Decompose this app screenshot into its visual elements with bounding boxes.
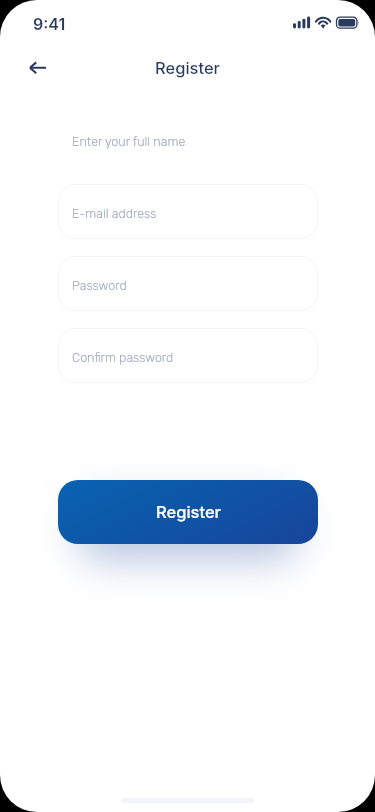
staticText: Confirm password [72, 350, 174, 365]
staticText: Enter your full name [72, 134, 186, 149]
button[interactable]: E-mail address [58, 184, 318, 239]
staticText: 9:41 [33, 14, 66, 33]
staticText: Register [155, 58, 220, 78]
button[interactable]: Back [18, 48, 58, 88]
staticText: Password [72, 278, 127, 293]
staticText: Register [156, 502, 221, 522]
button[interactable]: Enter your full name [58, 112, 318, 167]
staticText: E-mail address [72, 206, 157, 221]
button[interactable]: Password [58, 256, 318, 311]
button[interactable]: Register [58, 480, 318, 544]
button[interactable]: Confirm password [58, 328, 318, 383]
